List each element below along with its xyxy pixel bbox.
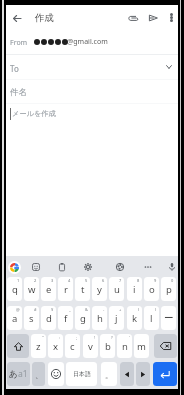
button[interactable]: h bbox=[92, 306, 107, 330]
staticText: ( bbox=[138, 307, 140, 312]
staticText: @gmail.com bbox=[67, 37, 108, 47]
button[interactable]: Emoji bbox=[48, 362, 64, 386]
button[interactable]: i bbox=[127, 277, 142, 301]
button[interactable]: v bbox=[83, 334, 98, 358]
button[interactable]: z bbox=[31, 334, 46, 358]
button[interactable]: Clipboard bbox=[54, 259, 70, 275]
button[interactable]: Move cursor left bbox=[120, 362, 134, 386]
staticText: To bbox=[10, 63, 19, 74]
button[interactable]: Move cursor right bbox=[136, 362, 150, 386]
staticText: c bbox=[70, 340, 75, 353]
button[interactable]: Back bbox=[7, 8, 27, 28]
button[interactable]: 、 bbox=[32, 362, 45, 386]
staticText: # bbox=[34, 307, 37, 312]
button[interactable]: y bbox=[92, 277, 107, 301]
staticText: 、 bbox=[35, 370, 43, 380]
staticText: v bbox=[88, 340, 93, 353]
staticText: q bbox=[12, 283, 18, 296]
staticText: z bbox=[36, 340, 41, 353]
staticText: @ bbox=[16, 307, 20, 312]
staticText: w bbox=[28, 283, 36, 296]
staticText: + bbox=[119, 307, 122, 312]
staticText: ¥ bbox=[51, 307, 54, 312]
staticText: m bbox=[137, 340, 146, 353]
button[interactable]: Switch input mode bbox=[7, 362, 30, 386]
button[interactable]: c bbox=[65, 334, 80, 358]
button[interactable]: ー bbox=[161, 306, 176, 330]
button[interactable]: To bbox=[6, 55, 178, 79]
button[interactable]: p bbox=[161, 277, 176, 301]
button[interactable]: From bbox=[6, 30, 178, 54]
button[interactable]: s bbox=[24, 306, 39, 330]
button[interactable]: k bbox=[127, 306, 142, 330]
staticText: n bbox=[122, 340, 128, 353]
button[interactable]: More options bbox=[162, 8, 180, 26]
button[interactable]: メールを作成 bbox=[6, 104, 178, 126]
button[interactable]: 件名 bbox=[6, 80, 178, 103]
staticText: _ bbox=[69, 307, 71, 312]
staticText: 。 bbox=[105, 370, 113, 380]
staticText: a1 bbox=[18, 368, 28, 380]
button[interactable]: Theme bbox=[112, 259, 128, 275]
staticText: i bbox=[133, 283, 136, 296]
staticText: 0 bbox=[171, 278, 174, 283]
staticText: g bbox=[80, 312, 86, 325]
staticText: あ bbox=[9, 369, 18, 380]
staticText: 2 bbox=[34, 278, 37, 283]
button[interactable]: t bbox=[75, 277, 90, 301]
button[interactable]: Voice input bbox=[164, 259, 180, 275]
staticText: 4 bbox=[68, 278, 71, 283]
staticText: ' bbox=[129, 335, 130, 340]
button[interactable]: Backspace bbox=[154, 334, 177, 358]
button[interactable]: o bbox=[144, 277, 159, 301]
button[interactable]: Send bbox=[143, 8, 163, 28]
button[interactable]: u bbox=[109, 277, 124, 301]
staticText: 作成 bbox=[35, 12, 54, 24]
button[interactable]: n bbox=[117, 334, 132, 358]
button[interactable]: Stickers bbox=[28, 259, 44, 275]
button[interactable]: f bbox=[58, 306, 73, 330]
button[interactable]: l bbox=[144, 306, 159, 330]
button[interactable]: Enter bbox=[153, 362, 177, 386]
staticText: p bbox=[166, 283, 172, 296]
staticText: & bbox=[85, 307, 88, 312]
staticText: f bbox=[64, 312, 68, 325]
button[interactable]: 。 bbox=[101, 362, 117, 386]
staticText: l bbox=[150, 312, 153, 325]
staticText: k bbox=[132, 312, 138, 325]
button[interactable]: Shift bbox=[7, 334, 29, 358]
staticText: r bbox=[64, 283, 68, 296]
button[interactable]: w bbox=[24, 277, 39, 301]
button[interactable]: x bbox=[48, 334, 63, 358]
staticText: s bbox=[29, 312, 34, 325]
staticText: ! bbox=[94, 335, 96, 340]
staticText: b bbox=[105, 340, 111, 353]
button[interactable]: a bbox=[7, 306, 22, 330]
staticText: ; bbox=[76, 335, 78, 340]
staticText: t bbox=[81, 283, 85, 296]
button[interactable]: Google bbox=[6, 259, 22, 275]
button[interactable]: Attach file bbox=[123, 8, 143, 28]
button[interactable]: j bbox=[109, 306, 124, 330]
button[interactable]: More options bbox=[140, 259, 156, 275]
button[interactable]: d bbox=[41, 306, 56, 330]
staticText: e bbox=[46, 283, 52, 296]
staticText: メールを作成 bbox=[12, 109, 56, 118]
button[interactable]: m bbox=[134, 334, 149, 358]
staticText: 日本語 bbox=[73, 370, 91, 378]
staticText: 1 bbox=[17, 278, 20, 283]
button[interactable]: g bbox=[75, 306, 90, 330]
staticText: u bbox=[114, 283, 120, 296]
staticText: " bbox=[42, 335, 44, 340]
button[interactable]: q bbox=[7, 277, 22, 301]
button[interactable]: Settings bbox=[80, 259, 96, 275]
staticText: From bbox=[10, 38, 28, 48]
staticText: h bbox=[97, 312, 103, 325]
staticText: o bbox=[149, 283, 155, 296]
button[interactable]: e bbox=[41, 277, 56, 301]
staticText: - bbox=[103, 307, 105, 312]
button[interactable]: 日本語 bbox=[66, 362, 97, 386]
button[interactable]: b bbox=[100, 334, 115, 358]
button[interactable]: r bbox=[58, 277, 73, 301]
staticText: 件名 bbox=[10, 87, 27, 98]
